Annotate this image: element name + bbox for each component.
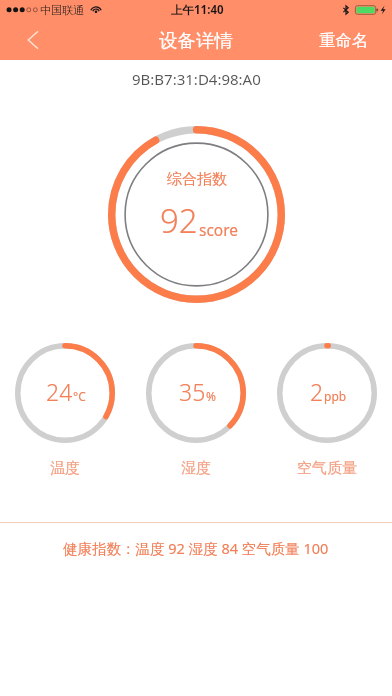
staticText: ppb (324, 388, 347, 404)
staticText: 健康指数：温度 92 湿度 84 空气质量 100 (63, 538, 329, 558)
button[interactable]: 重命名 (305, 20, 392, 60)
staticText: 重命名 (319, 30, 369, 51)
staticText: 9B:B7:31:D4:98:A0 (132, 69, 261, 89)
staticText: score (199, 219, 239, 240)
staticText: 湿度 (181, 459, 211, 478)
staticText: % (206, 388, 216, 404)
staticText: 设备详情 (159, 29, 233, 52)
staticText: 92 (160, 198, 198, 243)
staticText: 24 (46, 376, 73, 407)
staticText: 35 (179, 376, 206, 407)
staticText: 上午11:40 (171, 2, 224, 18)
staticText: 空气质量 (297, 459, 357, 478)
staticText: 2 (310, 376, 324, 407)
staticText: °C (73, 388, 86, 404)
staticText: 中国联通 (40, 3, 84, 17)
button[interactable]: Back (0, 20, 56, 60)
staticText: 综合指数 (167, 170, 227, 189)
staticText: 温度 (50, 459, 80, 478)
